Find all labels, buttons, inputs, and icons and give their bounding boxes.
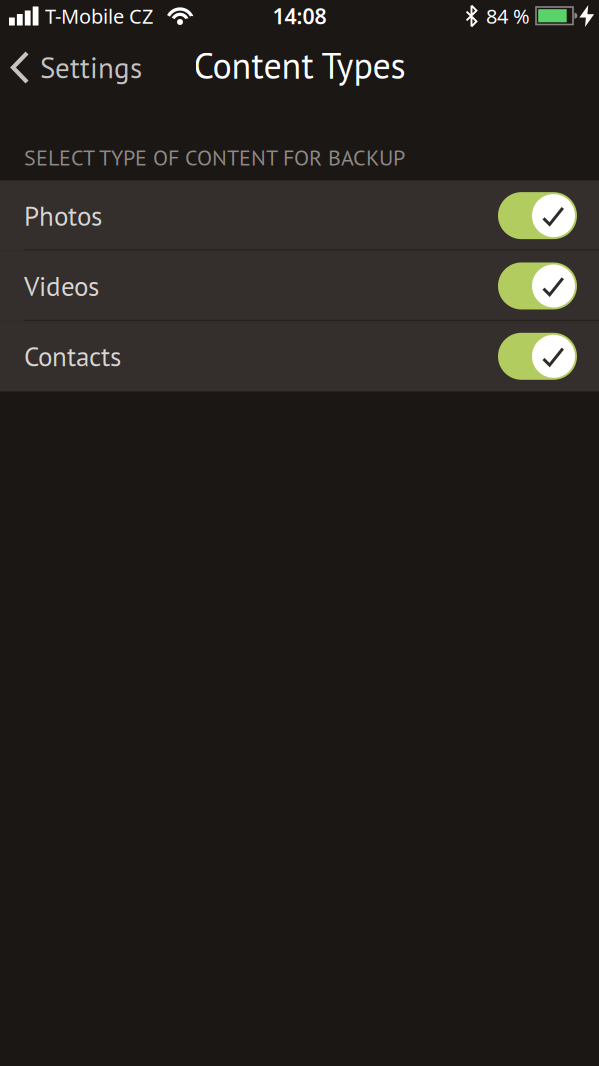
staticText: Photos bbox=[24, 198, 102, 233]
staticText: Videos bbox=[24, 268, 99, 303]
button[interactable]: Contacts bbox=[498, 333, 577, 380]
staticText: Settings bbox=[40, 49, 142, 86]
staticText: Contacts bbox=[24, 339, 121, 374]
staticText: 84 % bbox=[486, 3, 530, 29]
staticText: SELECT TYPE OF CONTENT FOR BACKUP bbox=[24, 143, 405, 171]
button[interactable]: Videos bbox=[498, 262, 577, 309]
staticText: 14:08 bbox=[272, 2, 326, 30]
staticText: T-Mobile CZ bbox=[45, 3, 153, 29]
staticText: Content Types bbox=[193, 42, 405, 89]
button[interactable]: Photos bbox=[498, 192, 577, 239]
button[interactable]: Back bbox=[0, 49, 142, 86]
